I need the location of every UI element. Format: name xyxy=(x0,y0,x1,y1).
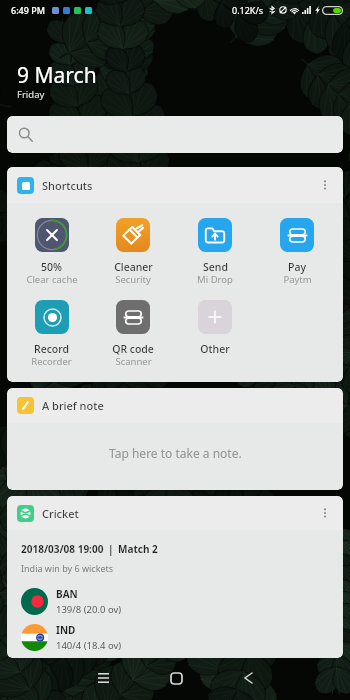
button[interactable]: Other xyxy=(174,300,256,369)
button[interactable]: More options xyxy=(313,173,337,197)
staticText: 2018/03/08 19:00 xyxy=(21,542,104,556)
button[interactable]: Tap here to take a note. xyxy=(7,423,343,490)
staticText: Security xyxy=(115,273,151,286)
staticText: | xyxy=(108,542,114,556)
staticText: Clear cache xyxy=(26,273,78,286)
button[interactable]: Record xyxy=(11,300,92,369)
button[interactable]: Send xyxy=(174,218,256,287)
staticText: 0.12K/s xyxy=(232,4,264,16)
button[interactable]: 2018/03/08 19:00 xyxy=(7,530,343,658)
button[interactable]: Home xyxy=(156,658,196,698)
staticText: India win by 6 wickets xyxy=(21,562,114,574)
button[interactable]: 50% xyxy=(11,218,92,287)
staticText: Mi Drop xyxy=(197,273,233,286)
staticText: Shortcuts xyxy=(42,178,93,193)
button[interactable]: Search xyxy=(7,116,343,153)
staticText: QR code xyxy=(112,342,154,356)
staticText: 9 March xyxy=(17,61,97,90)
staticText: Match 2 xyxy=(118,542,158,556)
staticText: 139/8 (20.0 ov) xyxy=(56,603,122,616)
staticText: A brief note xyxy=(42,398,104,413)
staticText: Scanner xyxy=(115,355,152,368)
staticText: 50% xyxy=(41,260,62,274)
staticText: Recorder xyxy=(31,355,72,368)
staticText: Paytm xyxy=(283,273,312,286)
button[interactable]: Pay xyxy=(256,218,338,287)
button[interactable]: Recents xyxy=(83,658,123,698)
staticText: Cricket xyxy=(42,506,79,521)
button[interactable]: Cleaner xyxy=(92,218,174,287)
staticText: Friday xyxy=(17,88,45,101)
staticText: Send xyxy=(203,260,228,274)
staticText: Tap here to take a note. xyxy=(109,445,242,461)
staticText: IND xyxy=(56,623,76,637)
staticText: 6:49 PM xyxy=(11,4,45,16)
staticText: 140/4 (18.4 ov) xyxy=(56,639,122,652)
staticText: BAN xyxy=(56,587,78,601)
button[interactable]: Back xyxy=(228,658,268,698)
button[interactable]: QR code xyxy=(92,300,174,369)
staticText: Pay xyxy=(288,260,306,274)
staticText: Record xyxy=(34,342,69,356)
button[interactable]: More options xyxy=(313,501,337,525)
staticText: Cleaner xyxy=(114,260,153,274)
staticText: Other xyxy=(200,342,230,356)
